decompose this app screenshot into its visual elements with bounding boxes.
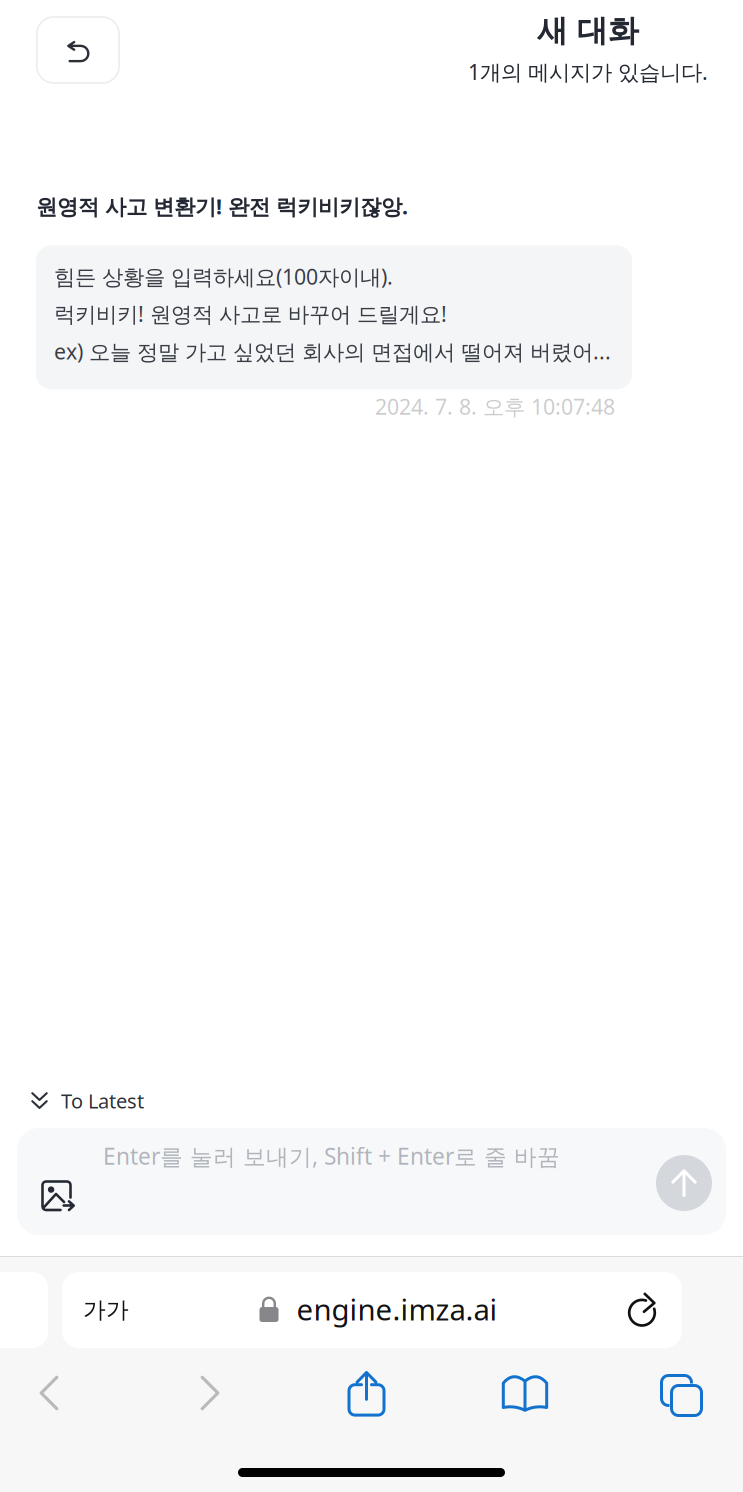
button[interactable]: Send — [656, 1128, 712, 1211]
button[interactable]: Forward — [161, 1361, 259, 1421]
button[interactable]: Tabs — [628, 1361, 726, 1421]
staticText: 새 대화 — [537, 12, 639, 50]
staticText: 1개의 메시지가 있습니다. — [468, 58, 708, 86]
staticText: Enter를 눌러 보내기, Shift + Enter로 줄 바꿈 — [103, 1141, 560, 1171]
button[interactable]: Bookmarks — [476, 1361, 574, 1421]
staticText: 가가 — [83, 1296, 129, 1324]
button[interactable]: To Latest — [0, 1087, 743, 1128]
staticText: 럭키비키! 원영적 사고로 바꾸어 드릴게요! — [54, 300, 447, 328]
staticText: ex) 오늘 정말 가고 싶었던 회사의 면접에서 떨어져 버렸어... — [54, 337, 611, 365]
staticText: 2024. 7. 8. 오후 10:07:48 — [375, 392, 615, 421]
button[interactable]: 가가 — [62, 1272, 682, 1348]
button[interactable]: Back — [36, 16, 120, 84]
staticText: 힘든 상황을 입력하세요(100자이내). — [54, 262, 393, 291]
button[interactable]: Back — [0, 1361, 98, 1421]
button[interactable]: Share — [318, 1361, 416, 1421]
staticText: To Latest — [61, 1087, 144, 1114]
staticText: engine.imza.ai — [296, 1289, 497, 1328]
staticText: 원영적 사고 변환기! 완전 럭키비키잖앙. — [36, 192, 408, 220]
button[interactable]: Add photo — [27, 1128, 89, 1212]
